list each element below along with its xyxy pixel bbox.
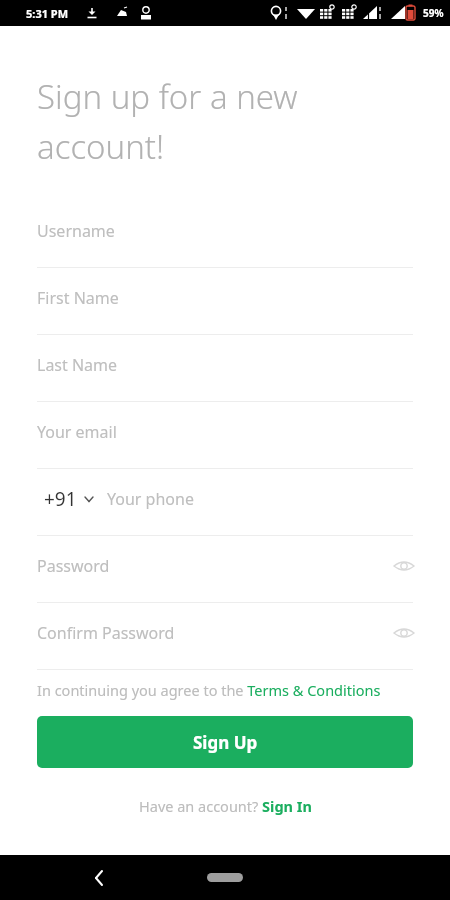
button[interactable]: First Name bbox=[0, 268, 450, 335]
staticText: Last Name bbox=[37, 354, 118, 376]
button[interactable]: Toggle password visibility bbox=[392, 621, 416, 645]
button[interactable]: Sign Up bbox=[37, 716, 413, 768]
button[interactable]: Have an account? Sign In bbox=[139, 796, 312, 816]
staticText: Your email bbox=[37, 421, 117, 443]
button[interactable]: Your email bbox=[0, 402, 450, 469]
staticText: Confirm Password bbox=[37, 622, 175, 644]
button[interactable]: Username bbox=[0, 201, 450, 268]
button[interactable]: Back bbox=[84, 863, 114, 893]
staticText: Your phone bbox=[107, 488, 194, 510]
staticText: 59% bbox=[423, 6, 444, 20]
button[interactable]: Toggle password visibility bbox=[392, 554, 416, 578]
staticText: +91 bbox=[44, 486, 77, 512]
button[interactable]: In continuing you agree to the Terms & C… bbox=[37, 680, 381, 700]
button[interactable]: +91 bbox=[0, 469, 450, 536]
staticText: Sign Up bbox=[193, 731, 258, 754]
button[interactable]: Home bbox=[207, 873, 243, 882]
staticText: First Name bbox=[37, 287, 119, 309]
staticText: In continuing you agree to the Terms & C… bbox=[37, 680, 381, 700]
staticText: Have an account? Sign In bbox=[139, 796, 312, 816]
staticText: 5:31 PM bbox=[26, 6, 69, 21]
button[interactable]: Password bbox=[0, 536, 450, 603]
button[interactable]: Last Name bbox=[0, 335, 450, 402]
staticText: Password bbox=[37, 555, 110, 577]
staticText: Sign up for a new account! bbox=[37, 74, 298, 169]
staticText: Username bbox=[37, 220, 115, 242]
button[interactable]: Confirm Password bbox=[0, 603, 450, 670]
